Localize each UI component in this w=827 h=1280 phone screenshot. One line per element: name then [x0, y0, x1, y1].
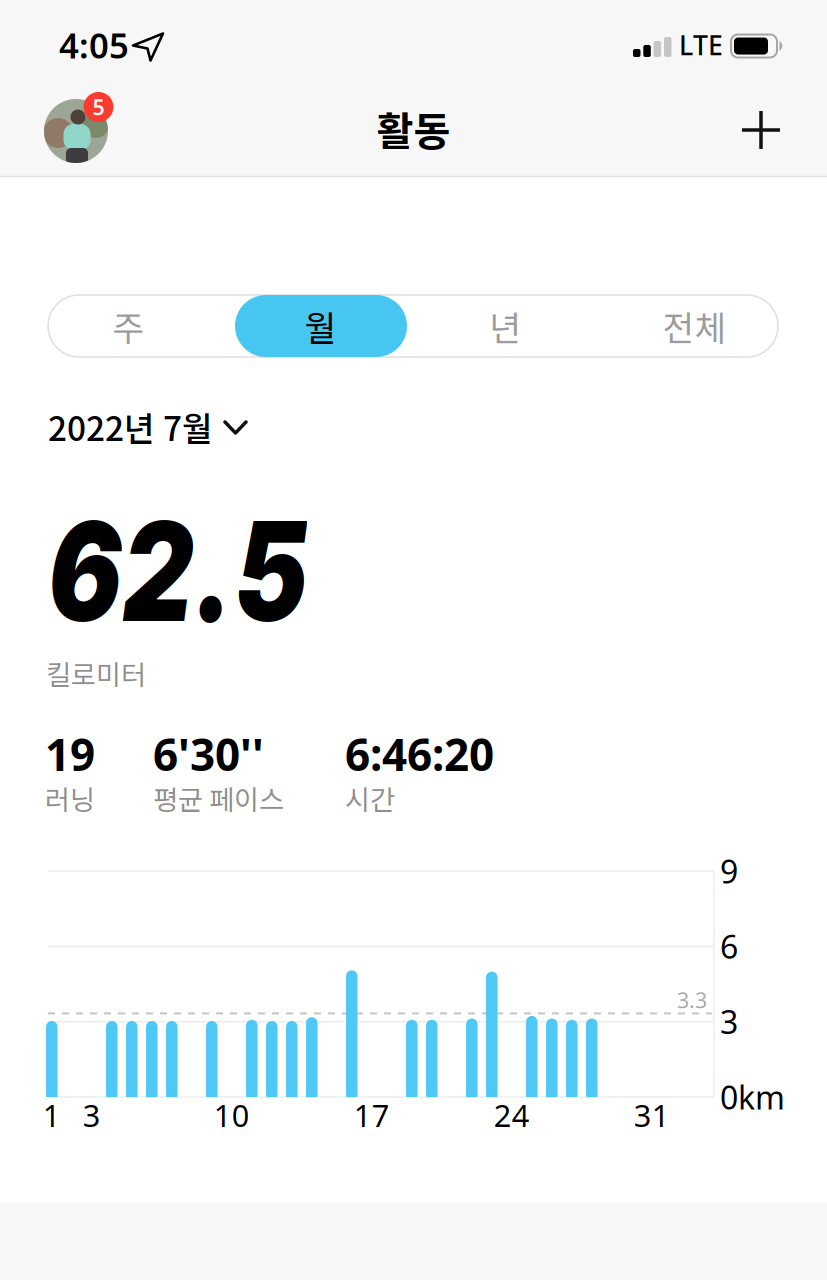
staticText: 주	[112, 301, 144, 351]
staticText: 9	[720, 850, 738, 892]
staticText: 6	[720, 925, 738, 968]
staticText: 킬로미터	[46, 653, 146, 693]
staticText: 19	[45, 725, 95, 783]
staticText: 활동	[376, 99, 450, 157]
staticText: 1	[43, 1095, 61, 1135]
button[interactable]: Profile	[44, 99, 108, 163]
staticText: 6:46:20	[345, 725, 494, 783]
staticText: 월	[304, 301, 336, 351]
staticText: 년	[489, 301, 521, 351]
staticText: 2022년 7월	[48, 402, 213, 451]
button[interactable]: 전체	[603, 295, 786, 357]
staticText: 3.3	[677, 986, 707, 1014]
staticText: 5	[92, 93, 104, 121]
staticText: 24	[494, 1095, 530, 1135]
staticText: 3	[83, 1095, 101, 1135]
staticText: 3	[720, 1000, 738, 1043]
button[interactable]: Add	[742, 111, 780, 149]
button[interactable]: 주	[37, 295, 220, 357]
staticText: 4:05	[59, 22, 129, 68]
staticText: 전체	[662, 301, 726, 351]
button[interactable]: Select month	[48, 406, 268, 446]
staticText: 6'30''	[153, 725, 264, 783]
staticText: 러닝	[45, 778, 95, 818]
button[interactable]: 년	[414, 295, 596, 357]
staticText: 10	[214, 1095, 250, 1135]
staticText: 시간	[345, 778, 395, 818]
staticText: 31	[634, 1095, 670, 1135]
staticText: LTE	[679, 27, 723, 63]
staticText: 평균 페이스	[153, 778, 284, 818]
button[interactable]: 월	[229, 295, 412, 357]
staticText: 0km	[720, 1076, 785, 1118]
staticText: 62.5	[48, 488, 373, 654]
staticText: 17	[354, 1095, 390, 1135]
